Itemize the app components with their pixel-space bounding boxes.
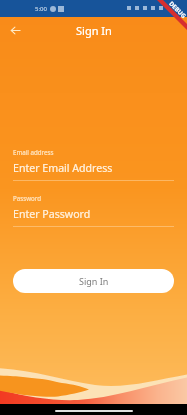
staticText: Enter Password <box>13 207 91 221</box>
staticText: Email address <box>13 148 54 156</box>
button[interactable]: Back <box>6 21 24 39</box>
staticText: Password <box>13 194 41 202</box>
staticText: DEBUG <box>167 0 187 20</box>
staticText: Sign In <box>76 23 112 38</box>
button[interactable]: Sign In <box>13 269 174 293</box>
staticText: Sign In <box>79 275 109 287</box>
staticText: 5:00 <box>35 5 47 13</box>
staticText: Enter Email Address <box>13 161 113 175</box>
